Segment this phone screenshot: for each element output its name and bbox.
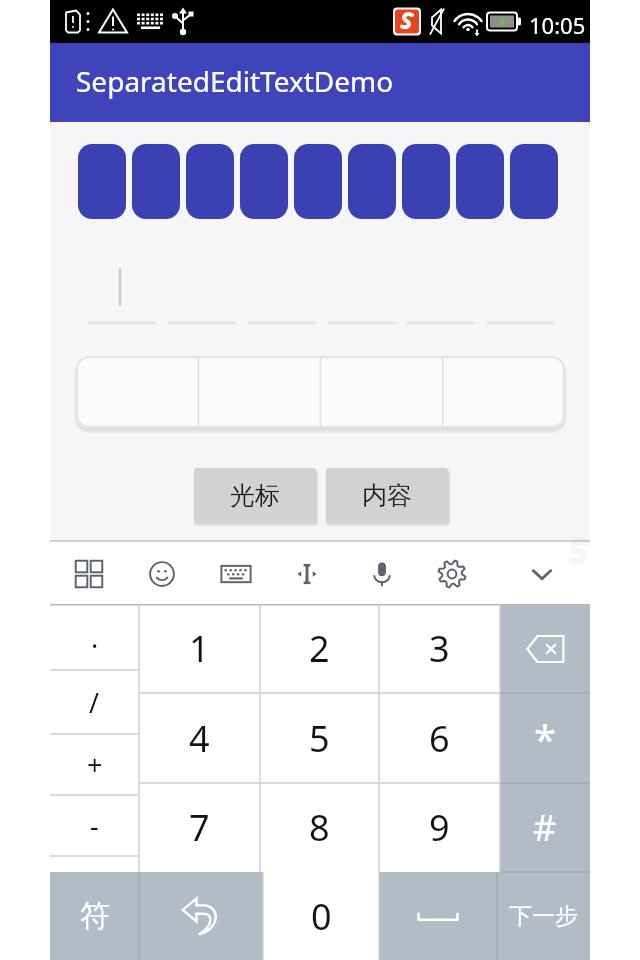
staticText: 3: [429, 624, 450, 673]
staticText: 8: [309, 803, 330, 852]
button[interactable]: Space: [379, 872, 497, 960]
staticText: 内容: [362, 480, 412, 511]
staticText: 1: [189, 624, 210, 673]
button[interactable]: Digit box 2: [132, 144, 180, 219]
button[interactable]: Undo: [139, 872, 263, 960]
staticText: 9: [429, 803, 450, 852]
staticText: 4: [189, 714, 210, 763]
button[interactable]: Backspace: [500, 604, 590, 693]
button[interactable]: Digit box 8: [456, 144, 504, 219]
staticText: SeparatedEditTextDemo: [76, 62, 394, 100]
staticText: /: [89, 684, 100, 721]
button[interactable]: Panels: [63, 548, 115, 600]
button[interactable]: +: [50, 734, 139, 795]
staticText: #: [533, 803, 557, 852]
button[interactable]: /: [50, 670, 139, 734]
button[interactable]: SeparatedEditTextDemo: [50, 43, 590, 122]
button[interactable]: Digit box 5: [294, 144, 342, 219]
button[interactable]: Move cursor: [281, 548, 333, 600]
button[interactable]: -: [50, 795, 139, 856]
staticText: .: [91, 619, 99, 656]
staticText: 符: [80, 897, 110, 935]
button[interactable]: 8: [260, 783, 379, 872]
button[interactable]: 光标: [194, 468, 316, 522]
button[interactable]: 2: [260, 604, 379, 693]
button[interactable]: #: [500, 783, 590, 872]
button[interactable]: Emoji: [136, 548, 188, 600]
button[interactable]: 6: [379, 693, 500, 783]
button[interactable]: Keyboard layout: [210, 548, 262, 600]
button[interactable]: 5: [260, 693, 379, 783]
button[interactable]: Digit box 1: [78, 144, 126, 219]
button[interactable]: Digit box 6: [348, 144, 396, 219]
staticText: 10:05: [529, 10, 586, 40]
staticText: 下一步: [509, 902, 578, 931]
button[interactable]: Settings: [426, 548, 478, 600]
button[interactable]: 符: [50, 872, 139, 960]
staticText: 光标: [230, 480, 280, 511]
button[interactable]: 7: [139, 783, 260, 872]
button[interactable]: Digit box 9: [510, 144, 558, 219]
staticText: 2: [309, 624, 330, 673]
button[interactable]: Digit box 3: [186, 144, 234, 219]
staticText: 0: [311, 892, 332, 941]
button[interactable]: 下一步: [497, 872, 590, 960]
button[interactable]: Digit box 7: [402, 144, 450, 219]
button[interactable]: 1: [139, 604, 260, 693]
button[interactable]: 9: [379, 783, 500, 872]
button[interactable]: 4: [139, 693, 260, 783]
staticText: 5: [309, 714, 330, 763]
staticText: +: [87, 746, 103, 783]
button[interactable]: .: [50, 604, 139, 670]
button[interactable]: Hide keyboard: [516, 548, 568, 600]
button[interactable]: Digit box 4: [240, 144, 288, 219]
button[interactable]: 3: [379, 604, 500, 693]
button[interactable]: *: [500, 693, 590, 783]
button[interactable]: 内容: [326, 468, 448, 522]
button[interactable]: 0: [263, 872, 379, 960]
staticText: 6: [429, 714, 450, 763]
staticText: *: [534, 711, 557, 765]
button[interactable]: Voice input: [356, 548, 408, 600]
staticText: 7: [189, 803, 210, 852]
staticText: -: [90, 807, 99, 844]
